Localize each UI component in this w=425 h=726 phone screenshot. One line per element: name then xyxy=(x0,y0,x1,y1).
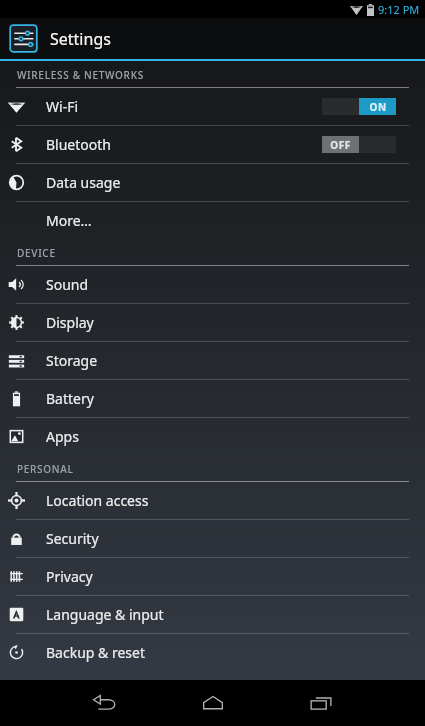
staticText: Wi-Fi xyxy=(46,97,79,116)
staticText: Bluetooth xyxy=(46,135,111,154)
button[interactable]: Home xyxy=(190,680,236,726)
button[interactable]: Back xyxy=(82,680,128,726)
button[interactable]: Security xyxy=(0,520,425,557)
button[interactable]: Language & input xyxy=(0,596,425,633)
button[interactable]: More… xyxy=(0,202,425,239)
staticText: Settings xyxy=(50,28,111,50)
button[interactable]: Turn on xyxy=(322,136,396,153)
button[interactable]: Location access xyxy=(0,482,425,519)
staticText: Privacy xyxy=(46,567,93,586)
button[interactable]: Privacy xyxy=(0,558,425,595)
staticText: Location access xyxy=(46,491,149,510)
staticText: PERSONAL xyxy=(17,462,74,476)
button[interactable]: Data usage xyxy=(0,164,425,201)
button[interactable]: Sound xyxy=(0,266,425,303)
button[interactable]: Storage xyxy=(0,342,425,379)
button[interactable]: Display xyxy=(0,304,425,341)
staticText: Sound xyxy=(46,275,89,294)
staticText: ACCOUNTS xyxy=(17,678,76,692)
button[interactable]: Backup & reset xyxy=(0,634,425,671)
staticText: Language & input xyxy=(46,605,164,624)
button[interactable]: Bluetooth xyxy=(0,126,425,163)
staticText: More… xyxy=(46,211,92,230)
staticText: Storage xyxy=(46,351,98,370)
staticText: Backup & reset xyxy=(46,643,145,662)
button[interactable]: Battery xyxy=(0,380,425,417)
button[interactable] xyxy=(0,698,425,726)
staticText: ON xyxy=(369,100,387,114)
staticText: WIRELESS & NETWORKS xyxy=(17,68,144,82)
staticText: Apps xyxy=(46,427,79,446)
button[interactable]: Apps xyxy=(0,418,425,455)
staticText: Security xyxy=(46,529,99,548)
button[interactable]: Turn off xyxy=(322,98,396,115)
staticText: 9:12 PM xyxy=(378,2,420,17)
staticText: DEVICE xyxy=(17,246,56,260)
staticText: Display xyxy=(46,313,94,332)
button[interactable]: Wi-Fi xyxy=(0,88,425,125)
button[interactable]: Recent apps xyxy=(298,680,344,726)
button[interactable]: Settings xyxy=(8,23,39,54)
staticText: OFF xyxy=(330,138,351,152)
staticText: Data usage xyxy=(46,173,121,192)
staticText: Battery xyxy=(46,389,94,408)
